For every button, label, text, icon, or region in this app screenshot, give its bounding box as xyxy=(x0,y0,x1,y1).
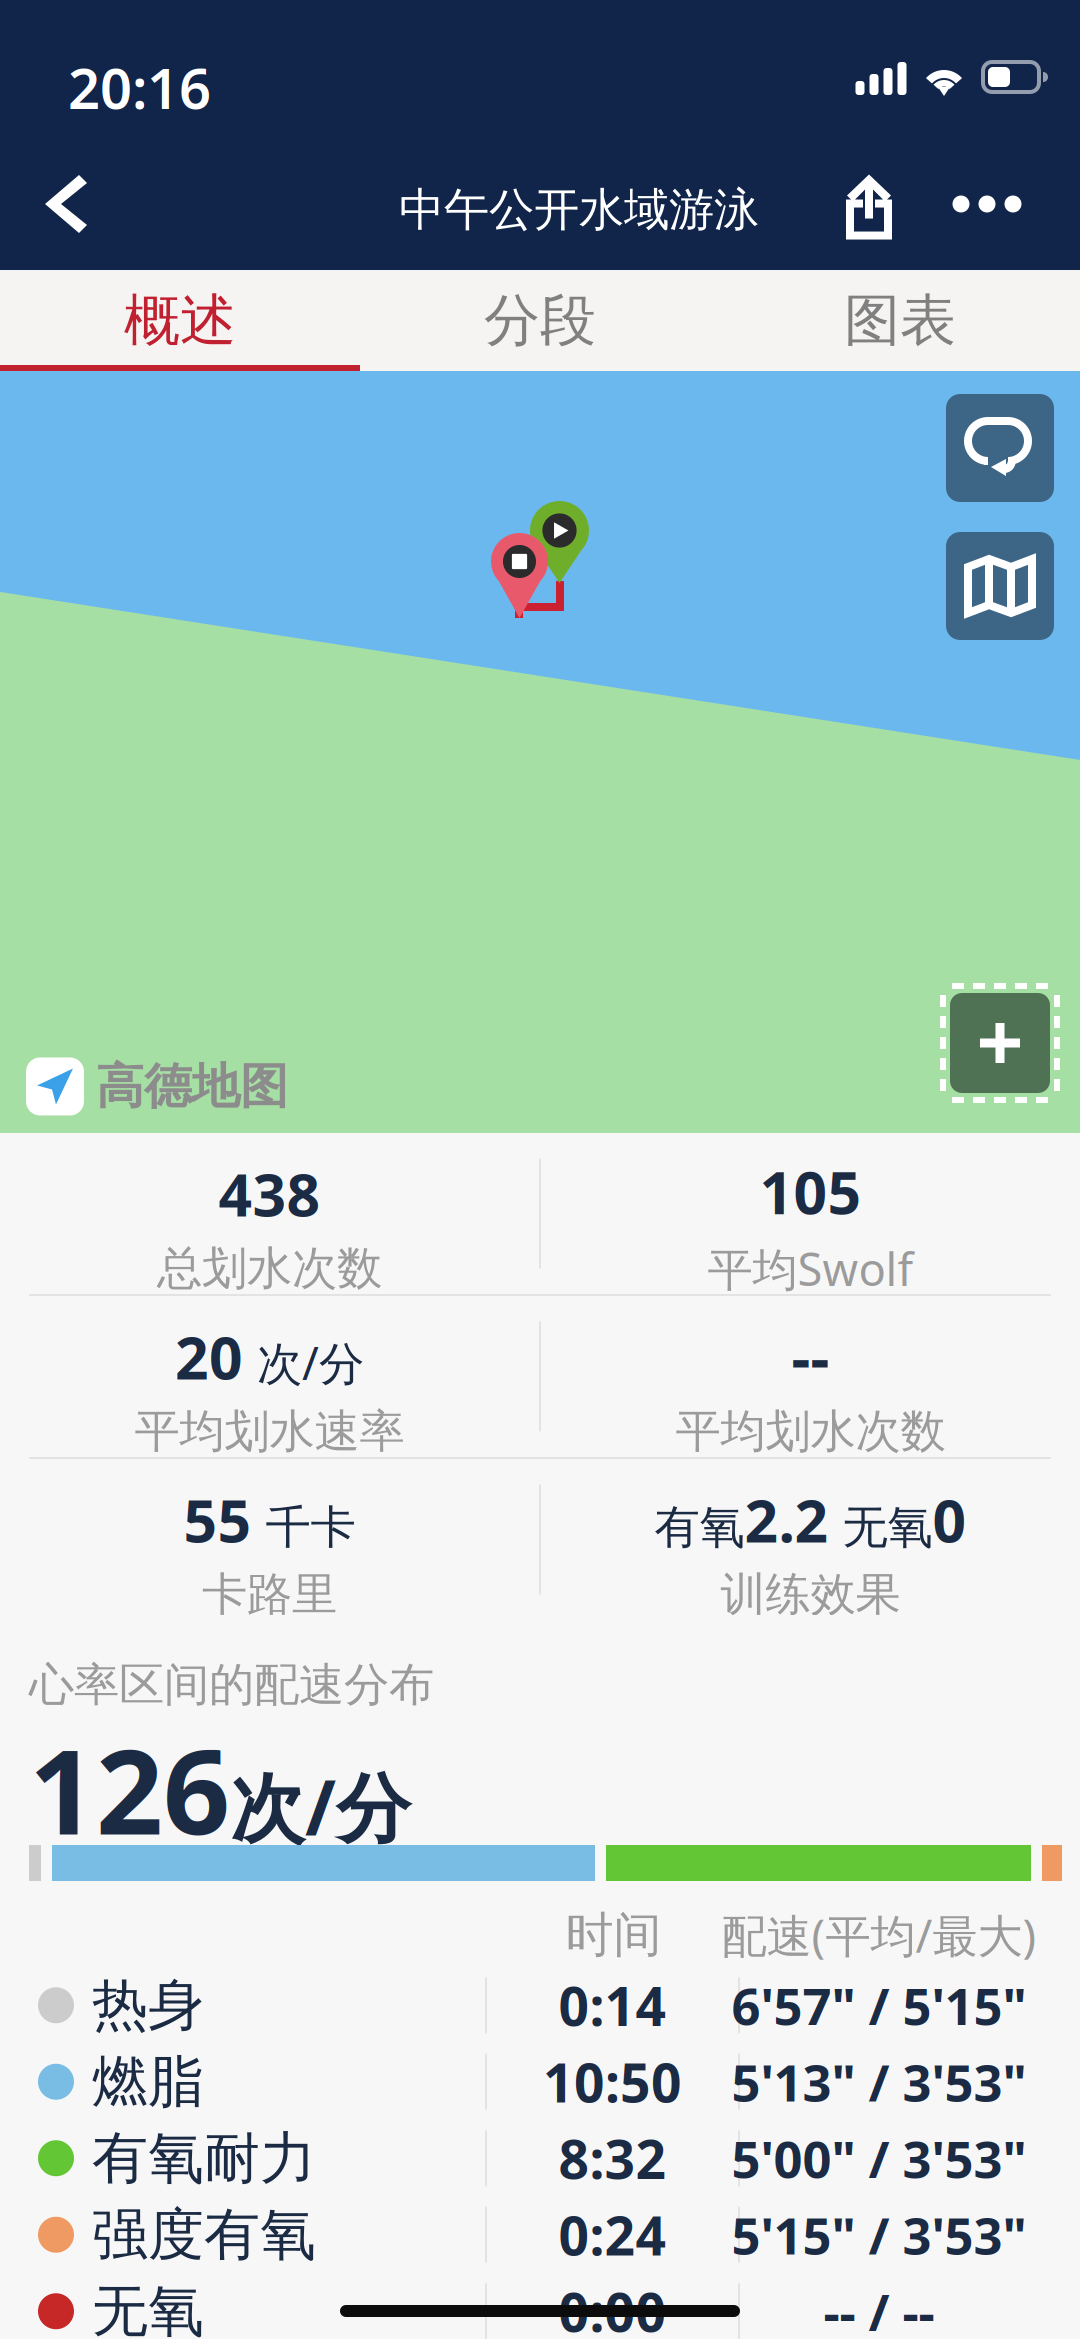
staticText: 时间 xyxy=(565,1906,661,1965)
staticText: 0:00 xyxy=(558,2276,666,2339)
staticText: 次/分 xyxy=(230,1757,411,1856)
button[interactable]: 回放 xyxy=(946,394,1054,502)
button[interactable]: 图表 xyxy=(720,270,1080,371)
staticText: 平均划水速率 xyxy=(134,1404,404,1459)
staticText: 热身 xyxy=(92,1971,204,2040)
button[interactable]: 概述 xyxy=(0,270,360,371)
staticText: 5'15" / 3'53" xyxy=(731,2201,1026,2268)
button[interactable]: 更多 xyxy=(922,138,1052,270)
staticText: 图表 xyxy=(844,286,956,355)
staticText: 总划水次数 xyxy=(157,1241,382,1296)
button[interactable]: 返回 xyxy=(8,138,124,270)
staticText: 0:14 xyxy=(558,1970,666,2041)
staticText: 无氧 xyxy=(92,2277,204,2339)
staticText: 配速(平均/最大) xyxy=(721,1905,1036,1965)
staticText: 千卡 xyxy=(251,1499,355,1555)
staticText: 6'57" / 5'15" xyxy=(731,1972,1026,2039)
staticText: 无氧 xyxy=(828,1499,932,1555)
button[interactable]: 放大 xyxy=(950,993,1050,1093)
staticText: 次/分 xyxy=(243,1332,364,1393)
staticText: 20:16 xyxy=(68,50,211,124)
staticText: 5'00" / 3'53" xyxy=(731,2125,1026,2192)
staticText: 卡路里 xyxy=(202,1567,337,1622)
staticText: -- xyxy=(791,1318,829,1396)
staticText: 有氧 xyxy=(654,1499,744,1555)
staticText: 平均Swolf xyxy=(707,1238,913,1299)
staticText: -- / -- xyxy=(823,2278,934,2339)
staticText: 20 xyxy=(175,1318,243,1396)
staticText: 105 xyxy=(759,1152,861,1230)
staticText: 10:50 xyxy=(543,2046,682,2117)
staticText: 0 xyxy=(932,1481,966,1559)
staticText: 有氧耐力 xyxy=(92,2124,316,2193)
staticText: 55 xyxy=(183,1481,251,1559)
staticText: 训练效果 xyxy=(720,1567,900,1622)
button[interactable]: 分享 xyxy=(811,141,927,273)
staticText: 平均划水次数 xyxy=(675,1404,945,1459)
staticText: 438 xyxy=(218,1155,320,1233)
staticText: 强度有氧 xyxy=(92,2200,316,2269)
staticText: 0:24 xyxy=(558,2199,666,2270)
staticText: 燃脂 xyxy=(92,2047,204,2116)
staticText: 概述 xyxy=(124,286,236,355)
staticText: 中午公开水域游泳 xyxy=(399,182,759,238)
staticText: 2.2 xyxy=(744,1481,828,1559)
staticText: 8:32 xyxy=(558,2123,666,2194)
button[interactable]: 地图类型 xyxy=(946,532,1054,640)
staticText: 分段 xyxy=(484,286,596,355)
staticText: 心率区间的配速分布 xyxy=(29,1657,434,1713)
button[interactable]: 分段 xyxy=(360,270,720,371)
staticText: 5'13" / 3'53" xyxy=(731,2048,1026,2115)
staticText: 高德地图 xyxy=(96,1057,288,1116)
staticText: 126 xyxy=(29,1711,230,1867)
